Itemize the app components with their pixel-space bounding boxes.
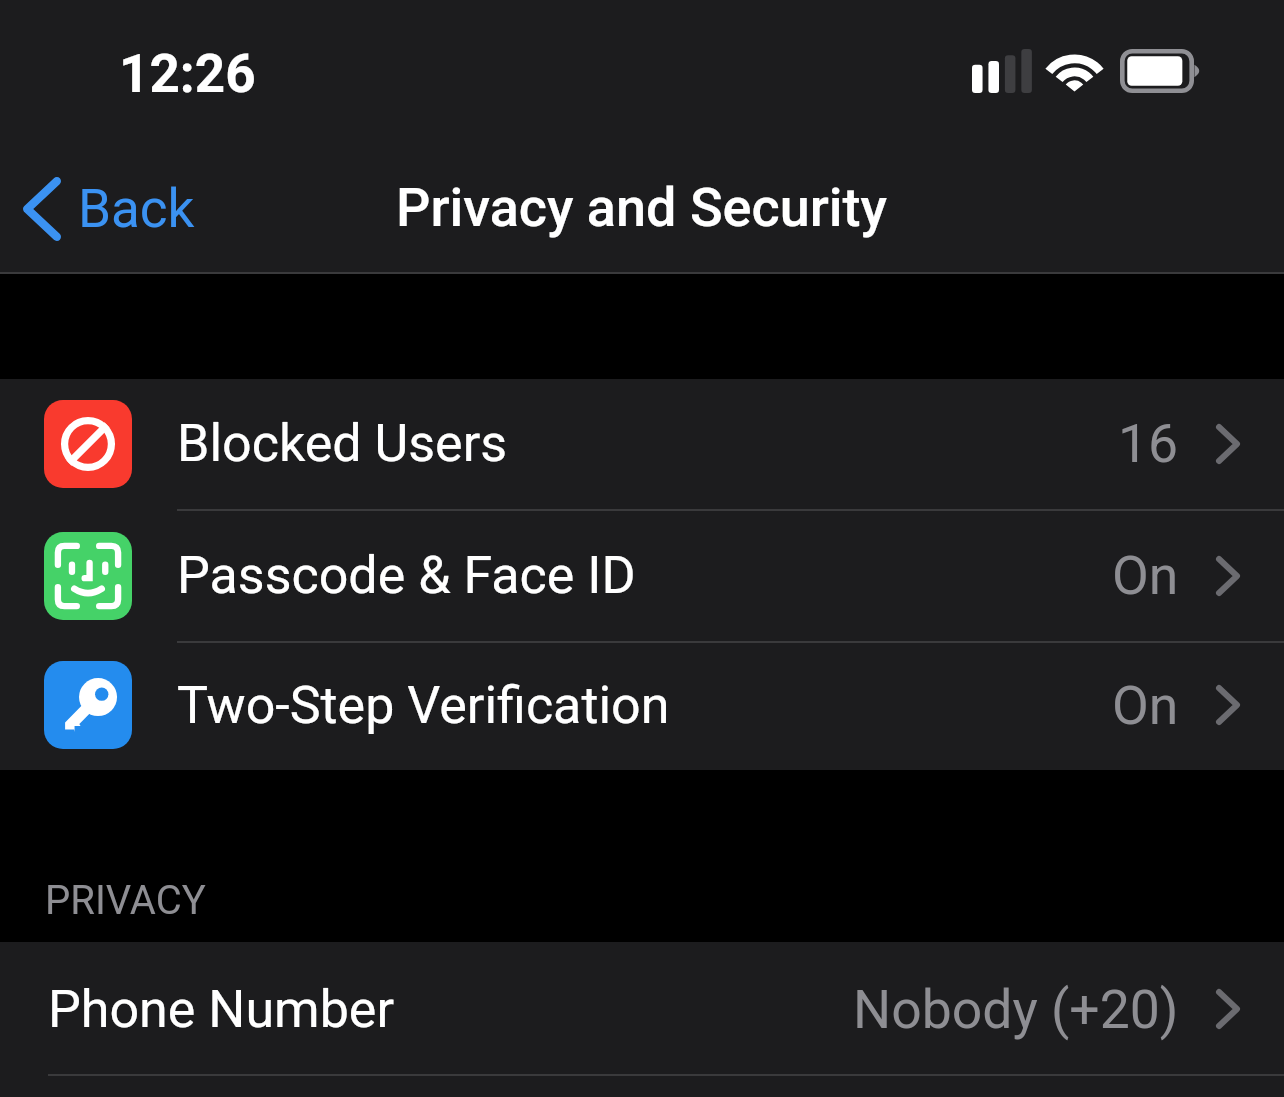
staticText: Nobody (+20) (853, 978, 1179, 1041)
button[interactable]: Blocked Users (0, 379, 1284, 511)
button[interactable]: Phone Number (0, 942, 1284, 1076)
button[interactable]: Passcode & Face ID (0, 511, 1284, 643)
staticText: Passcode & Face ID (177, 545, 636, 606)
staticText: PRIVACY (45, 877, 206, 924)
staticText: On (1112, 544, 1179, 607)
staticText: Two-Step Verification (177, 675, 670, 736)
staticText: Blocked Users (177, 413, 508, 474)
button[interactable]: Two-Step Verification (0, 643, 1284, 770)
staticText: Phone Number (48, 979, 395, 1040)
button[interactable]: Back (0, 169, 211, 249)
staticText: 12:26 (119, 43, 256, 105)
staticText: On (1112, 674, 1179, 737)
staticText: 16 (1118, 412, 1179, 475)
staticText: Back (78, 178, 195, 240)
staticText: Privacy and Security (396, 176, 888, 239)
